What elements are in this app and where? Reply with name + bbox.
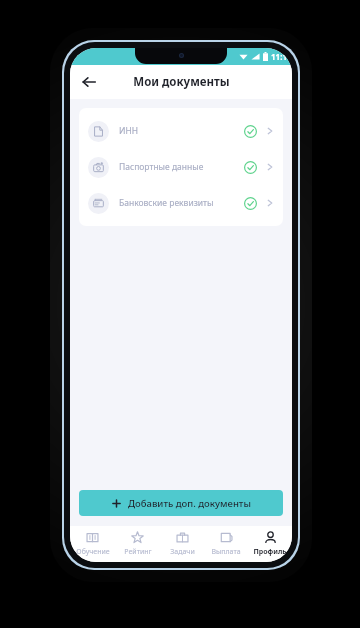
button[interactable]: Банковские реквизиты xyxy=(79,185,283,221)
staticText: 11:1 xyxy=(271,51,287,62)
button[interactable]: Профиль xyxy=(248,526,292,562)
button[interactable]: Назад xyxy=(76,69,102,95)
staticText: Выплата xyxy=(211,547,241,557)
staticText: Обучение xyxy=(76,547,110,557)
staticText: Рейтинг xyxy=(124,547,152,557)
staticText: Профиль xyxy=(253,547,287,557)
staticText: Задачи xyxy=(170,547,195,557)
staticText: Паспортные данные xyxy=(119,161,204,173)
button[interactable]: ИНН xyxy=(79,113,283,149)
button[interactable]: Добавить доп. документы xyxy=(79,490,283,516)
staticText: Добавить доп. документы xyxy=(128,497,251,510)
staticText: Банковские реквизиты xyxy=(119,197,214,209)
button[interactable]: Обучение xyxy=(70,526,115,562)
button[interactable]: Задачи xyxy=(160,526,204,562)
staticText: ИНН xyxy=(119,125,139,137)
staticText: Мои документы xyxy=(133,74,230,90)
button[interactable]: Выплата xyxy=(204,526,248,562)
button[interactable]: Рейтинг xyxy=(115,526,160,562)
button[interactable]: Паспортные данные xyxy=(79,149,283,185)
